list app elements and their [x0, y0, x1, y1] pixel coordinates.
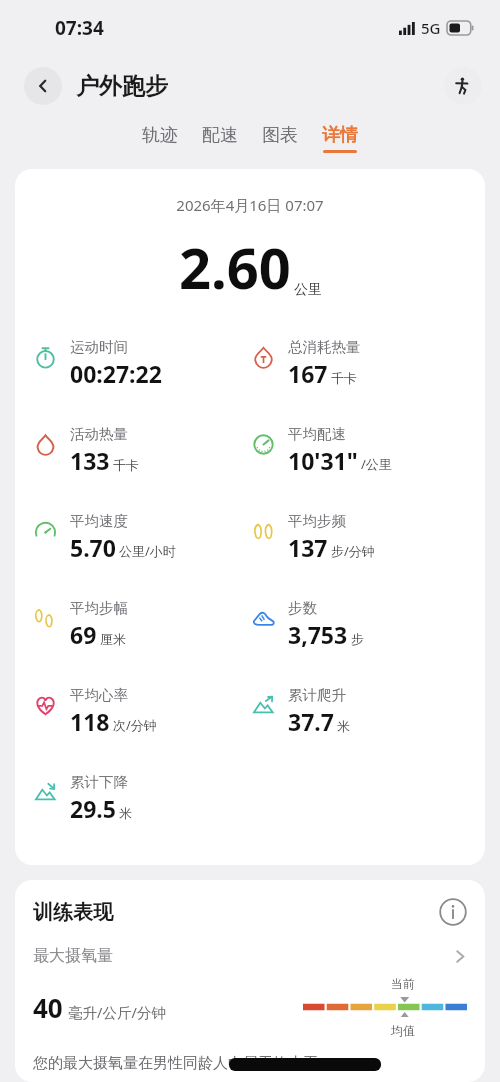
staticText: 步: [351, 631, 364, 647]
staticText: 毫升/公斤/分钟: [68, 1002, 166, 1022]
staticText: 米: [119, 805, 132, 821]
staticText: 详情: [322, 124, 358, 147]
staticText: 29.5: [70, 793, 116, 824]
staticText: 配速: [202, 124, 238, 147]
staticText: 平均步频: [288, 512, 346, 530]
staticText: 3,753: [288, 619, 348, 650]
staticText: 户外跑步: [76, 72, 168, 101]
staticText: 千卡: [113, 457, 139, 473]
staticText: 137: [288, 532, 328, 563]
button[interactable]: 平均心率: [15, 683, 250, 770]
staticText: /公里: [361, 455, 392, 473]
button[interactable]: 平均步幅: [15, 596, 250, 683]
staticText: 5.70: [70, 532, 116, 563]
button[interactable]: 运动类型: [444, 67, 482, 105]
staticText: 133: [70, 445, 110, 476]
staticText: 5G: [421, 18, 441, 38]
staticText: 69: [70, 619, 97, 650]
staticText: 轨迹: [142, 124, 178, 147]
staticText: 2.60: [179, 229, 291, 305]
staticText: 厘米: [100, 631, 126, 647]
button[interactable]: 总消耗热量: [250, 335, 485, 422]
staticText: 00:27:22: [70, 358, 162, 389]
button[interactable]: 活动热量: [15, 422, 250, 509]
staticText: 当前: [391, 976, 415, 991]
staticText: 167: [288, 358, 328, 389]
staticText: 活动热量: [70, 425, 128, 443]
staticText: 均值: [391, 1023, 415, 1038]
button[interactable]: 步数: [250, 596, 485, 683]
staticText: 40: [33, 990, 63, 1025]
button[interactable]: 累计下降: [15, 770, 250, 857]
button[interactable]: 说明: [439, 898, 467, 926]
staticText: 10'31": [288, 445, 358, 476]
staticText: 平均步幅: [70, 599, 128, 617]
staticText: 步/分钟: [331, 542, 375, 560]
staticText: 总消耗热量: [288, 338, 361, 356]
staticText: 您的最大摄氧量在男性同龄人中属于均水平: [33, 1054, 318, 1073]
staticText: 步数: [288, 599, 317, 617]
button[interactable]: 配速: [198, 122, 242, 155]
button[interactable]: 平均速度: [15, 509, 250, 596]
staticText: 37.7: [288, 706, 334, 737]
staticText: 平均配速: [288, 425, 346, 443]
staticText: 千卡: [331, 370, 357, 386]
staticText: 平均速度: [70, 512, 128, 530]
button[interactable]: 平均配速: [250, 422, 485, 509]
staticText: 平均心率: [70, 686, 128, 704]
staticText: 累计下降: [70, 773, 128, 791]
staticText: 公里/小时: [119, 542, 176, 560]
staticText: 训练表现: [33, 900, 113, 925]
staticText: 米: [337, 718, 350, 734]
button[interactable]: 最大摄氧量: [33, 946, 467, 966]
staticText: 次/分钟: [113, 716, 157, 734]
staticText: 2026年4月16日 07:07: [15, 195, 485, 215]
button[interactable]: 返回: [24, 67, 62, 105]
button[interactable]: 运动时间: [15, 335, 250, 422]
button[interactable]: 平均步频: [250, 509, 485, 596]
button[interactable]: 图表: [258, 122, 302, 155]
button[interactable]: 累计爬升: [250, 683, 485, 770]
staticText: 累计爬升: [288, 686, 346, 704]
button[interactable]: 详情: [318, 122, 362, 155]
staticText: 运动时间: [70, 338, 128, 356]
staticText: 118: [70, 706, 110, 737]
staticText: 图表: [262, 124, 298, 147]
staticText: 07:34: [55, 15, 104, 41]
staticText: 最大摄氧量: [33, 946, 113, 966]
button[interactable]: 轨迹: [138, 122, 182, 155]
staticText: 公里: [294, 281, 322, 299]
